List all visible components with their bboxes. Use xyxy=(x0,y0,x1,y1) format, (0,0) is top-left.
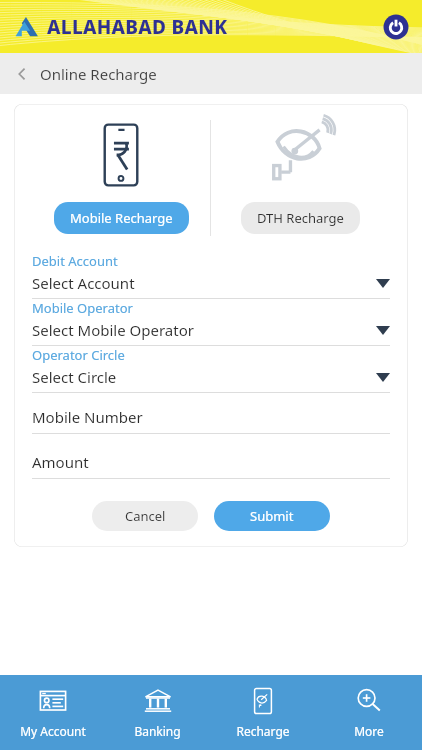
staticText: Banking xyxy=(134,723,181,739)
staticText: Recharge xyxy=(236,723,290,739)
staticText: Mobile Number xyxy=(32,407,143,427)
staticText: Select Account xyxy=(32,273,376,293)
button[interactable]: Logout xyxy=(382,13,410,41)
button[interactable]: Operator Circle xyxy=(32,346,390,393)
button[interactable]: Cancel xyxy=(92,501,198,531)
staticText: Select Circle xyxy=(32,367,376,387)
button[interactable]: Recharge xyxy=(210,675,316,750)
staticText: Online Recharge xyxy=(40,64,157,84)
staticText: Submit xyxy=(250,507,294,525)
staticText: My Account xyxy=(20,723,86,739)
button[interactable]: Mobile Recharge xyxy=(32,122,210,234)
button[interactable]: Banking xyxy=(105,675,210,750)
staticText: Amount xyxy=(32,452,89,472)
staticText: ALLAHABAD BANK xyxy=(47,14,228,40)
button[interactable]: More xyxy=(316,675,422,750)
staticText: Mobile Operator xyxy=(32,299,133,317)
button[interactable]: Online Recharge xyxy=(0,53,422,94)
staticText: Cancel xyxy=(125,507,166,525)
button[interactable]: Amount xyxy=(32,452,390,479)
staticText: DTH Recharge xyxy=(257,209,344,227)
button[interactable]: DTH Recharge xyxy=(211,122,390,234)
staticText: Operator Circle xyxy=(32,346,125,364)
button[interactable]: Submit xyxy=(214,501,330,531)
button[interactable]: Mobile Operator xyxy=(32,299,390,346)
staticText: Debit Account xyxy=(32,252,118,270)
button[interactable]: Debit Account xyxy=(32,252,390,299)
staticText: Mobile Recharge xyxy=(70,209,173,227)
button[interactable]: My Account xyxy=(0,675,105,750)
staticText: More xyxy=(354,723,384,739)
staticText: Select Mobile Operator xyxy=(32,320,376,340)
button[interactable]: Mobile Number xyxy=(32,407,390,434)
